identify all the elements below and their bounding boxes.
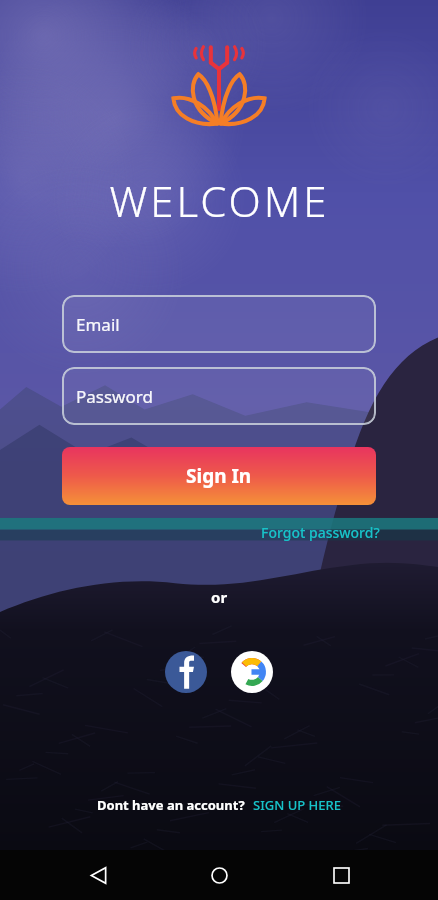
button[interactable]: Sign in with Facebook bbox=[165, 651, 207, 693]
staticText: SIGN UP HERE bbox=[253, 796, 341, 814]
button[interactable]: Recent apps bbox=[317, 851, 365, 899]
button[interactable]: Forgot password? bbox=[261, 523, 380, 542]
button[interactable]: Sign in with Google bbox=[231, 651, 273, 693]
staticText: WELCOME bbox=[109, 172, 330, 229]
staticText: Forgot password? bbox=[261, 523, 380, 542]
button[interactable]: Email bbox=[62, 295, 376, 353]
staticText: Dont have an account? bbox=[97, 796, 245, 814]
button[interactable]: Password bbox=[62, 367, 376, 425]
staticText: or bbox=[211, 587, 228, 607]
button[interactable]: Home bbox=[195, 851, 243, 899]
staticText: Email bbox=[76, 313, 120, 336]
staticText: Password bbox=[76, 385, 153, 408]
button[interactable]: Back bbox=[74, 851, 122, 899]
staticText: Sign In bbox=[186, 463, 252, 489]
button[interactable]: Sign In bbox=[62, 447, 376, 505]
button[interactable]: SIGN UP HERE bbox=[253, 796, 341, 814]
